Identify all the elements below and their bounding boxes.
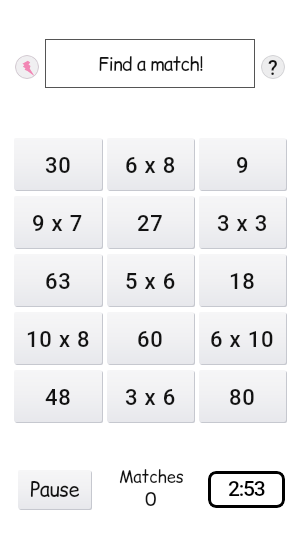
button[interactable]: 60 [107, 312, 194, 364]
button[interactable]: 10 x 8 [14, 312, 102, 364]
staticText: 5 x 6 [125, 269, 177, 295]
staticText: 30 [45, 153, 72, 179]
button[interactable]: 80 [199, 370, 286, 422]
staticText: 60 [137, 327, 164, 353]
staticText: 0 [145, 486, 157, 513]
button[interactable]: 5 x 6 [107, 254, 194, 306]
button[interactable]: 9 [199, 138, 286, 190]
button[interactable]: Pause [18, 470, 91, 509]
staticText: 18 [229, 269, 256, 295]
button[interactable]: 63 [14, 254, 102, 306]
button[interactable]: Help [261, 55, 285, 79]
staticText: 3 x 6 [125, 385, 177, 411]
staticText: 9 x 7 [32, 211, 84, 237]
staticText: 80 [229, 385, 256, 411]
staticText: 9 [236, 153, 250, 179]
staticText: 2:53 [228, 477, 265, 502]
button[interactable]: 48 [14, 370, 102, 422]
staticText: Matches [119, 466, 184, 489]
button[interactable]: 9 x 7 [14, 196, 102, 248]
button[interactable]: Power up [15, 55, 39, 79]
staticText: 27 [137, 211, 164, 237]
staticText: ? [268, 56, 278, 79]
staticText: 6 x 8 [125, 153, 177, 179]
staticText: 6 x 10 [210, 327, 275, 353]
button[interactable]: 18 [199, 254, 286, 306]
button[interactable]: 6 x 10 [199, 312, 286, 364]
button[interactable]: 3 x 3 [199, 196, 286, 248]
button[interactable]: 6 x 8 [107, 138, 194, 190]
button[interactable]: 27 [107, 196, 194, 248]
button[interactable]: 3 x 6 [107, 370, 194, 422]
staticText: 3 x 3 [217, 211, 269, 237]
button[interactable]: 30 [14, 138, 102, 190]
staticText: 48 [45, 385, 72, 411]
staticText: Pause [30, 476, 79, 504]
staticText: 63 [45, 269, 72, 295]
staticText: 10 x 8 [26, 327, 91, 353]
staticText: Find a match! [98, 51, 203, 77]
